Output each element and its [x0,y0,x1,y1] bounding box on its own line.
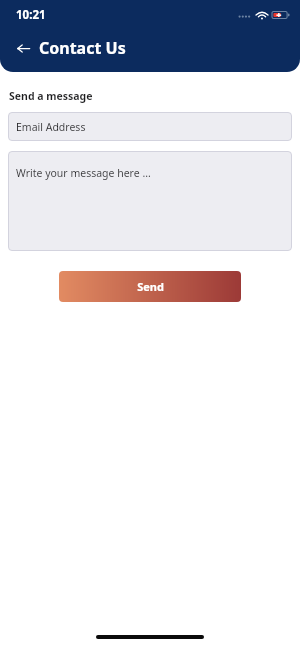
staticText: 10:21 [16,7,46,23]
staticText: Send [137,279,164,294]
button[interactable]: Send [59,271,241,302]
button[interactable]: Write your message here ... [8,151,292,251]
staticText: Email Address [16,120,86,134]
staticText: Contact Us [39,37,126,59]
button[interactable]: Back [13,38,33,58]
staticText: Send a message [9,89,93,103]
button[interactable]: Email Address [8,112,292,141]
staticText: Write your message here ... [16,166,151,180]
